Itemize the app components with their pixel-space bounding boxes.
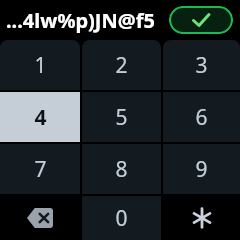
- staticText: 8: [115, 155, 128, 184]
- button[interactable]: Confirm: [169, 6, 233, 34]
- button[interactable]: Backspace: [0, 196, 80, 240]
- button[interactable]: 7: [0, 144, 80, 194]
- staticText: 4: [34, 103, 47, 132]
- staticText: 7: [34, 155, 47, 184]
- staticText: 6: [195, 103, 208, 132]
- button[interactable]: 4: [0, 92, 80, 142]
- staticText: 3: [195, 51, 208, 80]
- button[interactable]: Asterisk: [163, 196, 240, 240]
- button[interactable]: 8: [82, 144, 161, 194]
- staticText: ...4lw%p)JN@f5: [6, 7, 155, 34]
- button[interactable]: 2: [82, 40, 161, 90]
- button[interactable]: 1: [0, 40, 80, 90]
- staticText: 0: [115, 204, 128, 233]
- button[interactable]: 5: [82, 92, 161, 142]
- button[interactable]: 6: [163, 92, 240, 142]
- button[interactable]: 0: [82, 196, 161, 240]
- staticText: 2: [115, 51, 128, 80]
- staticText: 5: [115, 103, 128, 132]
- button[interactable]: 9: [163, 144, 240, 194]
- staticText: 9: [195, 155, 208, 184]
- button[interactable]: 3: [163, 40, 240, 90]
- staticText: 1: [34, 51, 47, 80]
